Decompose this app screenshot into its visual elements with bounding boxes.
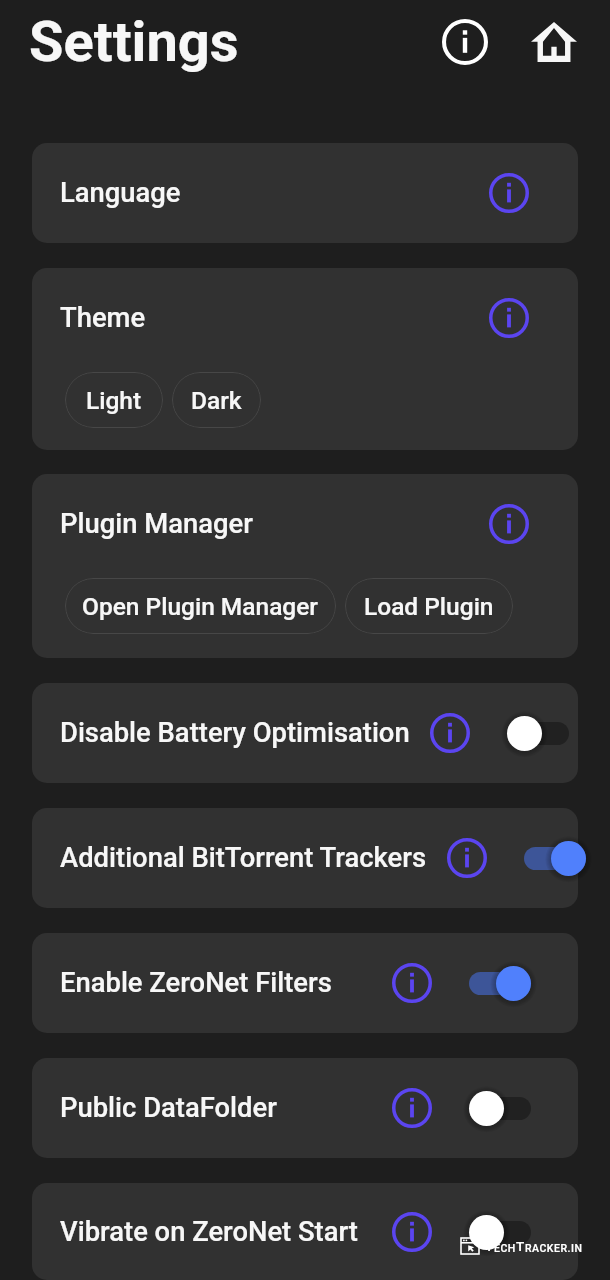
staticText: Light — [86, 386, 142, 415]
button[interactable]: Open Plugin Manager — [65, 578, 336, 634]
button[interactable]: Info — [447, 838, 487, 878]
button[interactable]: Info — [489, 504, 529, 544]
staticText: Vibrate on ZeroNet Start — [60, 1216, 358, 1248]
button[interactable] — [32, 1058, 578, 1158]
staticText: Settings — [29, 9, 239, 75]
button[interactable]: Home — [523, 14, 585, 70]
button[interactable] — [32, 933, 578, 1033]
button[interactable]: Language — [32, 143, 578, 243]
button[interactable]: Info — [392, 963, 432, 1003]
button[interactable]: Info — [489, 298, 529, 338]
staticText: Enable ZeroNet Filters — [60, 967, 332, 999]
staticText: Disable Battery Optimisation — [60, 717, 410, 749]
staticText: RACKER.IN — [525, 1242, 583, 1254]
button[interactable]: Dark — [172, 372, 261, 428]
staticText: Open Plugin Manager — [82, 592, 319, 621]
button[interactable]: Info — [392, 1212, 432, 1252]
staticText: ECH — [494, 1242, 516, 1254]
button[interactable]: Toggle off — [469, 1073, 531, 1143]
button[interactable]: Theme — [32, 268, 578, 450]
staticText: Dark — [191, 386, 242, 415]
staticText: Plugin Manager — [60, 508, 253, 540]
button[interactable]: Plugin Manager — [32, 474, 578, 658]
button[interactable]: Light — [65, 372, 163, 428]
button[interactable] — [32, 683, 578, 783]
button[interactable]: Info — [489, 173, 529, 213]
button[interactable]: Info — [392, 1088, 432, 1128]
staticText: Additional BitTorrent Trackers — [60, 842, 427, 874]
staticText: Language — [60, 177, 181, 209]
button[interactable]: Info — [442, 19, 488, 65]
staticText: Theme — [60, 302, 146, 334]
button[interactable] — [32, 808, 578, 908]
button[interactable]: Toggle off — [469, 1197, 531, 1267]
button[interactable]: Toggle off — [507, 698, 569, 768]
button[interactable]: Toggle on — [524, 823, 586, 893]
button[interactable] — [32, 1183, 578, 1280]
button[interactable]: Toggle on — [469, 948, 531, 1018]
staticText: T — [485, 1238, 494, 1254]
button[interactable]: Load Plugin — [345, 578, 513, 634]
staticText: Load Plugin — [364, 592, 494, 621]
staticText: Public DataFolder — [60, 1092, 277, 1124]
staticText: T — [516, 1238, 525, 1254]
button[interactable]: Info — [430, 713, 470, 753]
